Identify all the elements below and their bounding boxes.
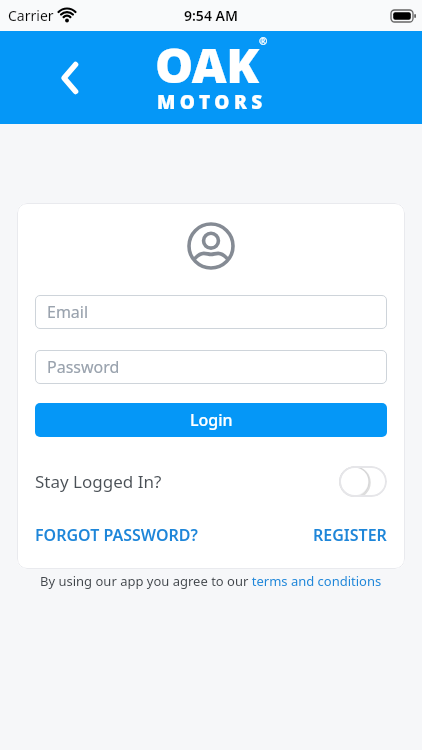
staticText: 9:54 AM [184,6,238,25]
button[interactable]: Login [35,403,387,437]
staticText: Carrier [8,6,54,25]
staticText: OAK [155,32,259,97]
button[interactable]: Email [35,295,387,329]
staticText: Email [47,301,89,323]
button[interactable] [50,58,90,98]
button[interactable]: REGISTER [313,524,387,546]
button[interactable]: FORGOT PASSWORD? [35,524,198,546]
button[interactable]: Password [35,350,387,384]
staticText: Stay Logged In? [35,470,162,493]
staticText: Login [190,409,233,431]
staticText: Password [47,356,120,378]
staticText: ® [259,34,268,48]
staticText: By using our app you agree to our terms … [40,572,382,590]
staticText: MOTORS [157,89,267,115]
button[interactable] [339,466,387,497]
